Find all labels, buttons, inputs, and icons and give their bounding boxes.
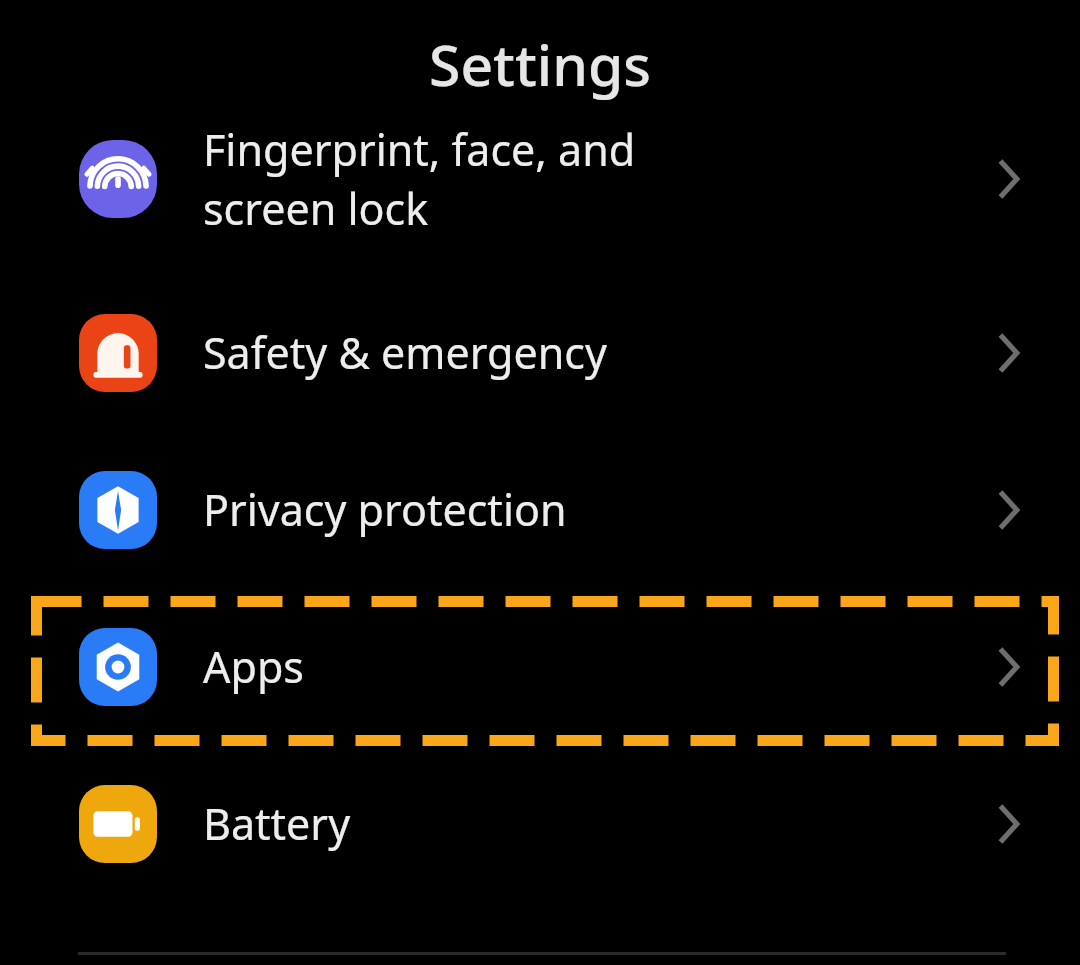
- staticText: screen lock: [203, 179, 429, 238]
- button[interactable]: Apps: [0, 588, 1080, 745]
- staticText: Settings: [429, 25, 651, 103]
- button[interactable]: Privacy protection: [0, 431, 1080, 588]
- button[interactable]: Battery: [0, 745, 1080, 902]
- staticText: Fingerprint, face, and: [203, 120, 636, 179]
- button[interactable]: Fingerprint, face, and: [0, 112, 1080, 246]
- other: Apps highlighted: [31, 596, 1059, 746]
- button[interactable]: Safety & emergency: [0, 274, 1080, 431]
- staticText: Apps: [203, 637, 304, 696]
- staticText: Battery: [203, 794, 351, 853]
- staticText: Safety & emergency: [203, 323, 607, 382]
- staticText: Privacy protection: [203, 480, 567, 539]
